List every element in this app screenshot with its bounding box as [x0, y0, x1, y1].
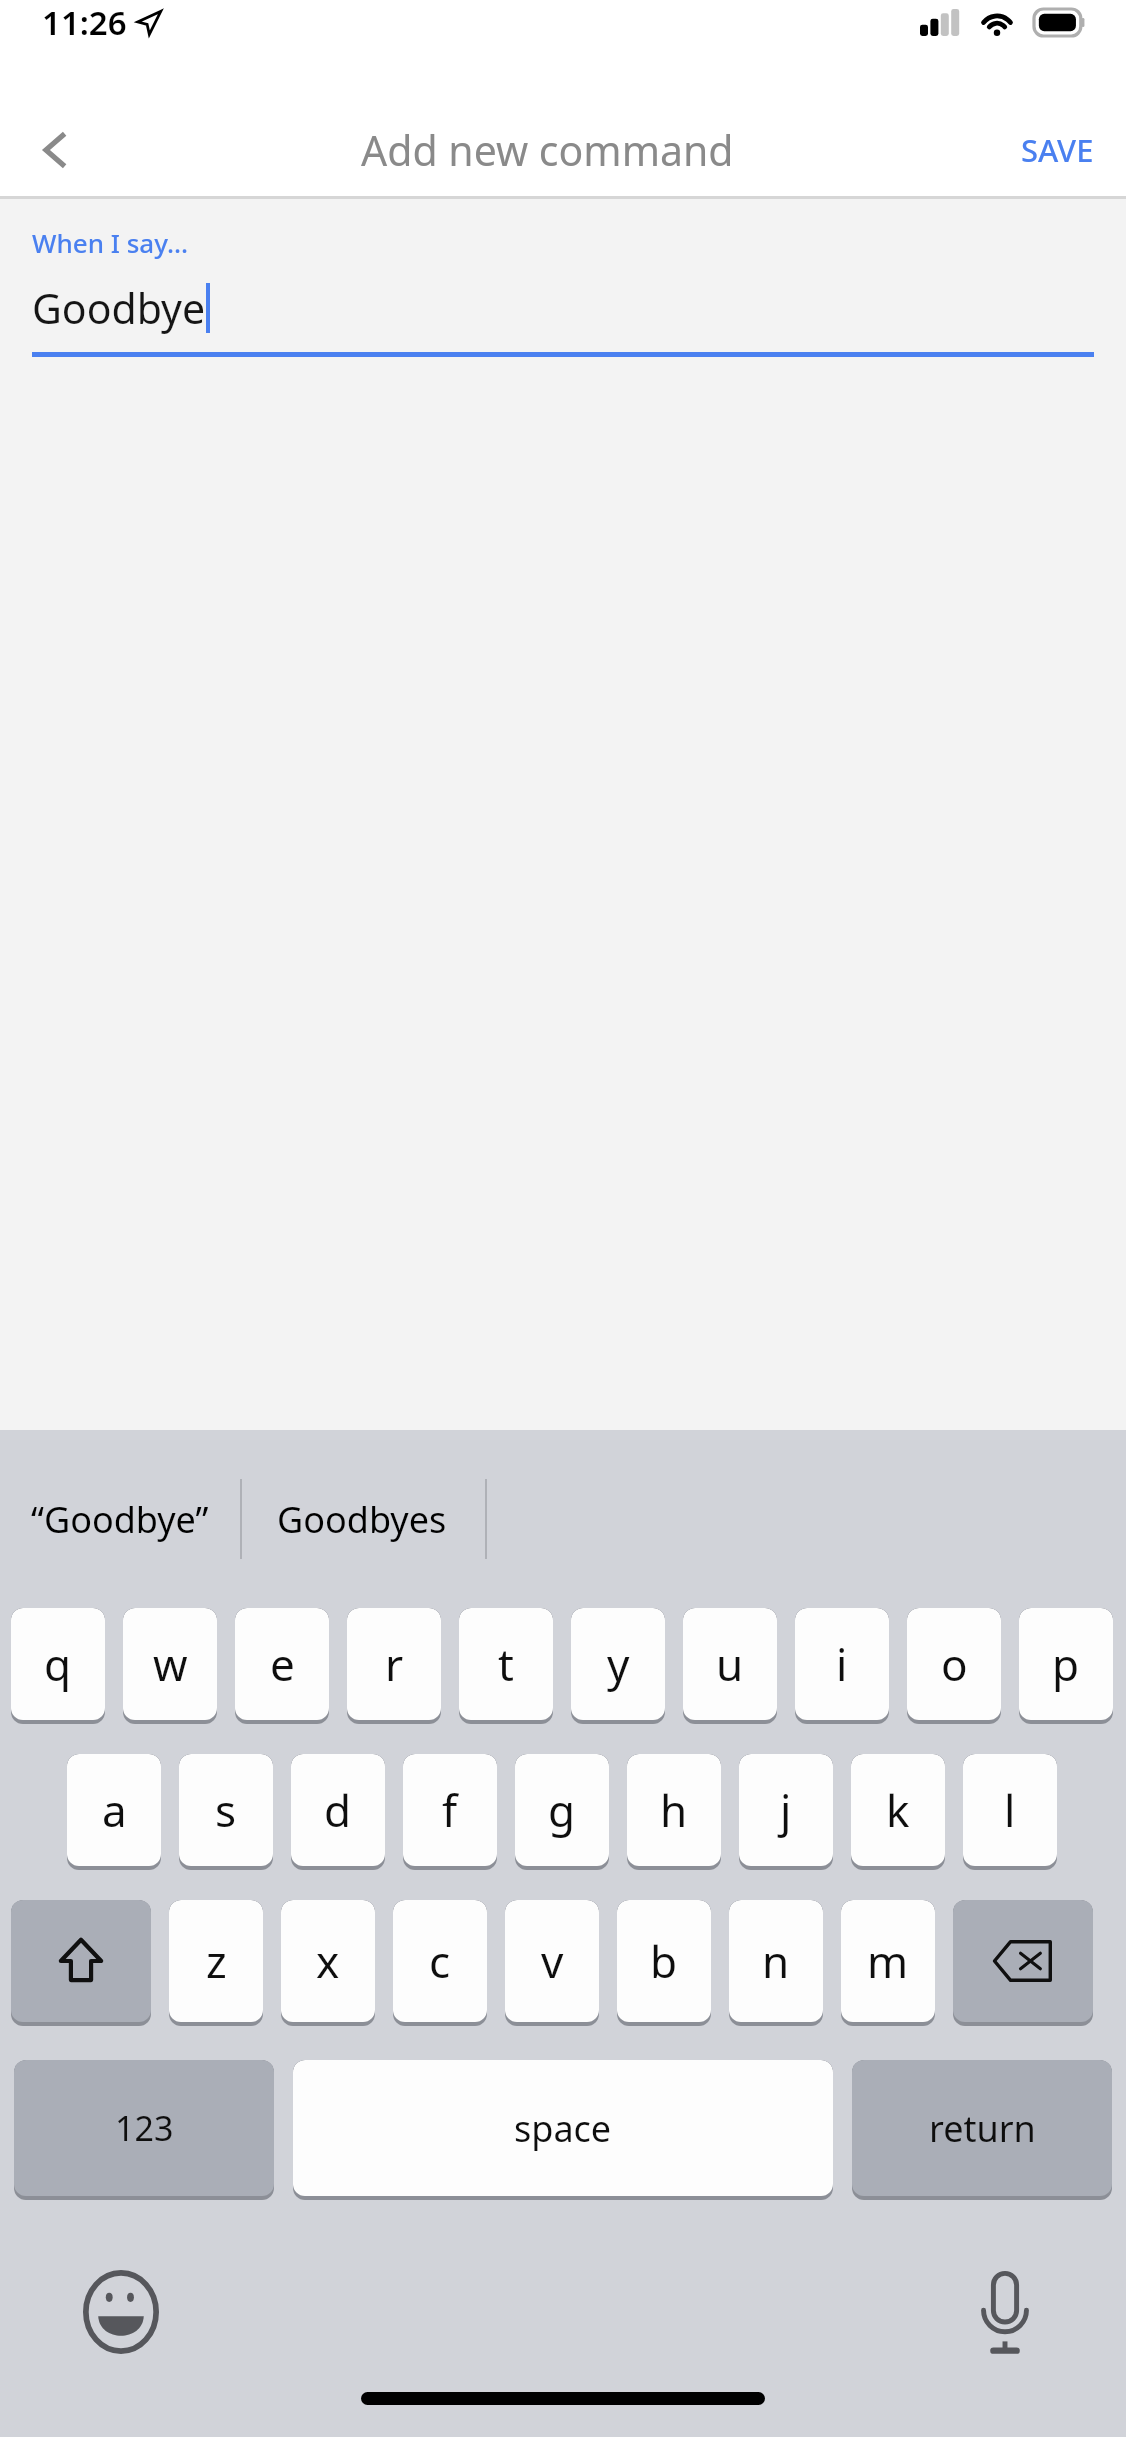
button[interactable]: n — [729, 1900, 823, 2026]
button[interactable]: f — [403, 1754, 497, 1870]
button[interactable]: Emoji — [76, 2267, 166, 2357]
staticText: “Goodbye” — [31, 1495, 209, 1544]
staticText: When I say... — [32, 225, 189, 260]
staticText: x — [316, 1931, 340, 1991]
staticText: p — [1052, 1634, 1080, 1694]
button[interactable]: s — [179, 1754, 273, 1870]
button[interactable]: Shift — [11, 1900, 151, 2026]
staticText: i — [836, 1634, 848, 1694]
button[interactable]: space — [293, 2060, 833, 2200]
staticText: Add new command — [361, 122, 734, 178]
staticText: g — [548, 1780, 576, 1840]
staticText: return — [929, 2104, 1036, 2153]
button[interactable]: d — [291, 1754, 385, 1870]
button[interactable]: z — [169, 1900, 263, 2026]
button[interactable]: g — [515, 1754, 609, 1870]
button[interactable]: h — [627, 1754, 721, 1870]
staticText: m — [867, 1931, 909, 1991]
staticText: b — [650, 1931, 678, 1991]
button[interactable]: i — [795, 1608, 889, 1724]
button[interactable]: 123 — [14, 2060, 274, 2200]
staticText: Goodbyes — [277, 1495, 447, 1544]
staticText: j — [780, 1780, 792, 1840]
button[interactable]: “Goodbye” — [6, 1453, 234, 1585]
staticText: t — [498, 1634, 514, 1694]
staticText: w — [153, 1634, 188, 1694]
button[interactable]: Dictation — [960, 2267, 1050, 2357]
staticText: e — [270, 1634, 295, 1694]
button[interactable]: r — [347, 1608, 441, 1724]
button[interactable]: Back — [20, 114, 92, 186]
staticText: k — [886, 1780, 910, 1840]
button[interactable]: t — [459, 1608, 553, 1724]
button[interactable]: k — [851, 1754, 945, 1870]
button[interactable]: y — [571, 1608, 665, 1724]
staticText: s — [215, 1780, 237, 1840]
staticText: f — [442, 1780, 458, 1840]
button[interactable]: l — [963, 1754, 1057, 1870]
button[interactable]: p — [1019, 1608, 1113, 1724]
staticText: o — [941, 1634, 968, 1694]
button[interactable]: Goodbyes — [248, 1453, 476, 1585]
button[interactable]: v — [505, 1900, 599, 2026]
button[interactable]: q — [11, 1608, 105, 1724]
button[interactable]: return — [852, 2060, 1112, 2200]
staticText: h — [660, 1780, 688, 1840]
staticText: y — [607, 1634, 630, 1694]
button[interactable]: a — [67, 1754, 161, 1870]
staticText: u — [716, 1634, 744, 1694]
button[interactable]: o — [907, 1608, 1001, 1724]
staticText: Goodbye — [32, 280, 206, 336]
button[interactable]: j — [739, 1754, 833, 1870]
staticText: 11:26 — [42, 0, 127, 45]
staticText: 123 — [115, 2105, 174, 2151]
staticText: space — [514, 2104, 612, 2153]
button[interactable]: x — [281, 1900, 375, 2026]
staticText: SAVE — [1021, 129, 1094, 171]
button[interactable]: w — [123, 1608, 217, 1724]
button[interactable]: e — [235, 1608, 329, 1724]
staticText: a — [102, 1780, 127, 1840]
staticText: d — [324, 1780, 352, 1840]
button[interactable]: b — [617, 1900, 711, 2026]
staticText: q — [44, 1634, 72, 1694]
staticText: z — [206, 1931, 227, 1991]
staticText: n — [762, 1931, 790, 1991]
button[interactable]: c — [393, 1900, 487, 2026]
button[interactable]: u — [683, 1608, 777, 1724]
staticText: c — [429, 1931, 451, 1991]
button[interactable]: SAVE — [1005, 117, 1110, 183]
staticText: v — [541, 1931, 564, 1991]
button[interactable]: Backspace — [953, 1900, 1093, 2026]
staticText: l — [1004, 1780, 1016, 1840]
button[interactable]: m — [841, 1900, 935, 2026]
staticText: r — [385, 1634, 404, 1694]
